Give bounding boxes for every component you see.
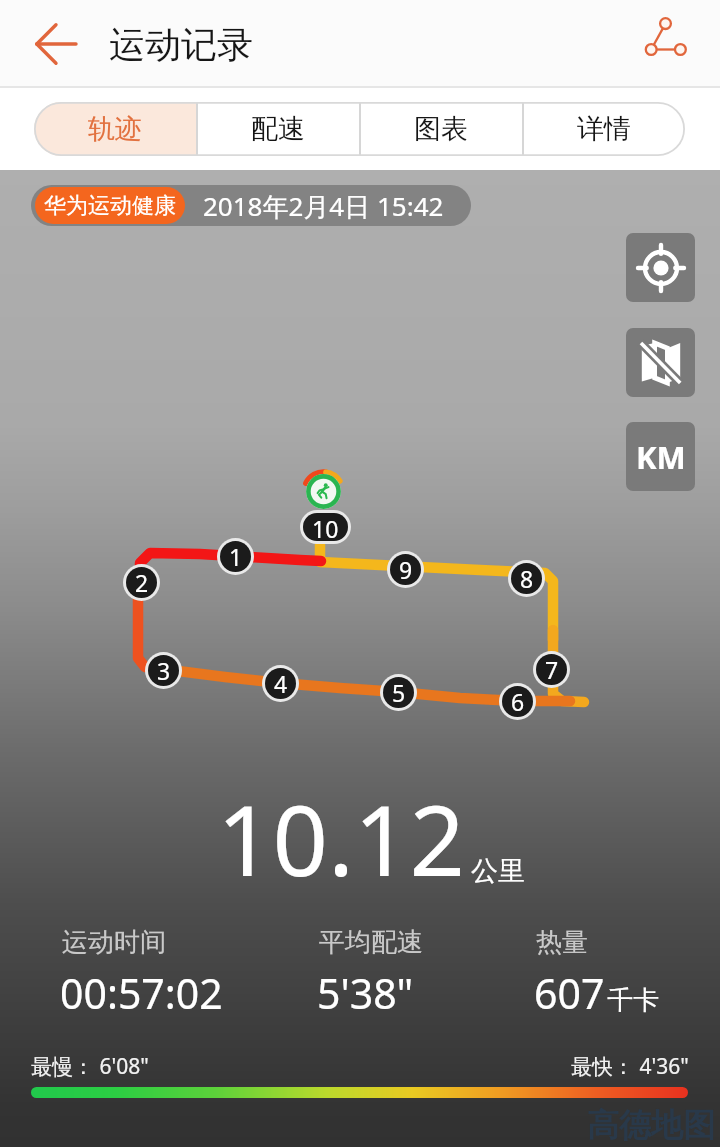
button[interactable]: 华为运动健康: [31, 185, 471, 226]
staticText: 1: [229, 541, 243, 572]
staticText: 高德地图: [587, 1105, 715, 1145]
button[interactable]: Locate: [626, 233, 695, 302]
staticText: 5'38": [317, 965, 414, 1021]
button[interactable]: 配速: [196, 102, 359, 156]
button[interactable]: Back: [26, 14, 86, 74]
button[interactable]: 详情: [522, 102, 685, 156]
button[interactable]: 图表: [359, 102, 522, 156]
staticText: 平均配速: [319, 926, 423, 959]
staticText: 运动时间: [62, 926, 166, 959]
button[interactable]: 轨迹: [34, 102, 196, 156]
staticText: 千卡: [607, 984, 659, 1017]
staticText: 公里: [471, 854, 525, 888]
staticText: 4: [274, 668, 288, 699]
staticText: 5: [392, 677, 406, 708]
staticText: 00:57:02: [60, 965, 223, 1021]
staticText: 最慢： 6'08": [31, 1052, 149, 1081]
staticText: 图表: [414, 112, 468, 146]
staticText: 6: [511, 686, 525, 717]
staticText: 华为运动健康: [44, 192, 176, 220]
staticText: 2018年2月4日 15:42: [203, 188, 444, 224]
staticText: 8: [520, 563, 534, 594]
button[interactable]: Toggle map: [626, 328, 695, 397]
button[interactable]: Share: [632, 14, 692, 74]
staticText: 2: [135, 567, 149, 598]
staticText: 详情: [577, 112, 631, 146]
button[interactable]: Unit KM: [626, 422, 695, 491]
staticText: 运动记录: [109, 22, 253, 67]
staticText: 配速: [251, 112, 305, 146]
staticText: 热量: [536, 926, 588, 959]
staticText: 10.12: [217, 772, 465, 904]
staticText: 7: [545, 654, 559, 685]
staticText: 607: [534, 965, 605, 1021]
staticText: 3: [157, 655, 171, 686]
staticText: 10: [312, 513, 339, 541]
staticText: KM: [636, 436, 686, 478]
staticText: 9: [399, 554, 413, 585]
staticText: 最快： 4'36": [571, 1052, 689, 1081]
staticText: 轨迹: [88, 112, 142, 146]
